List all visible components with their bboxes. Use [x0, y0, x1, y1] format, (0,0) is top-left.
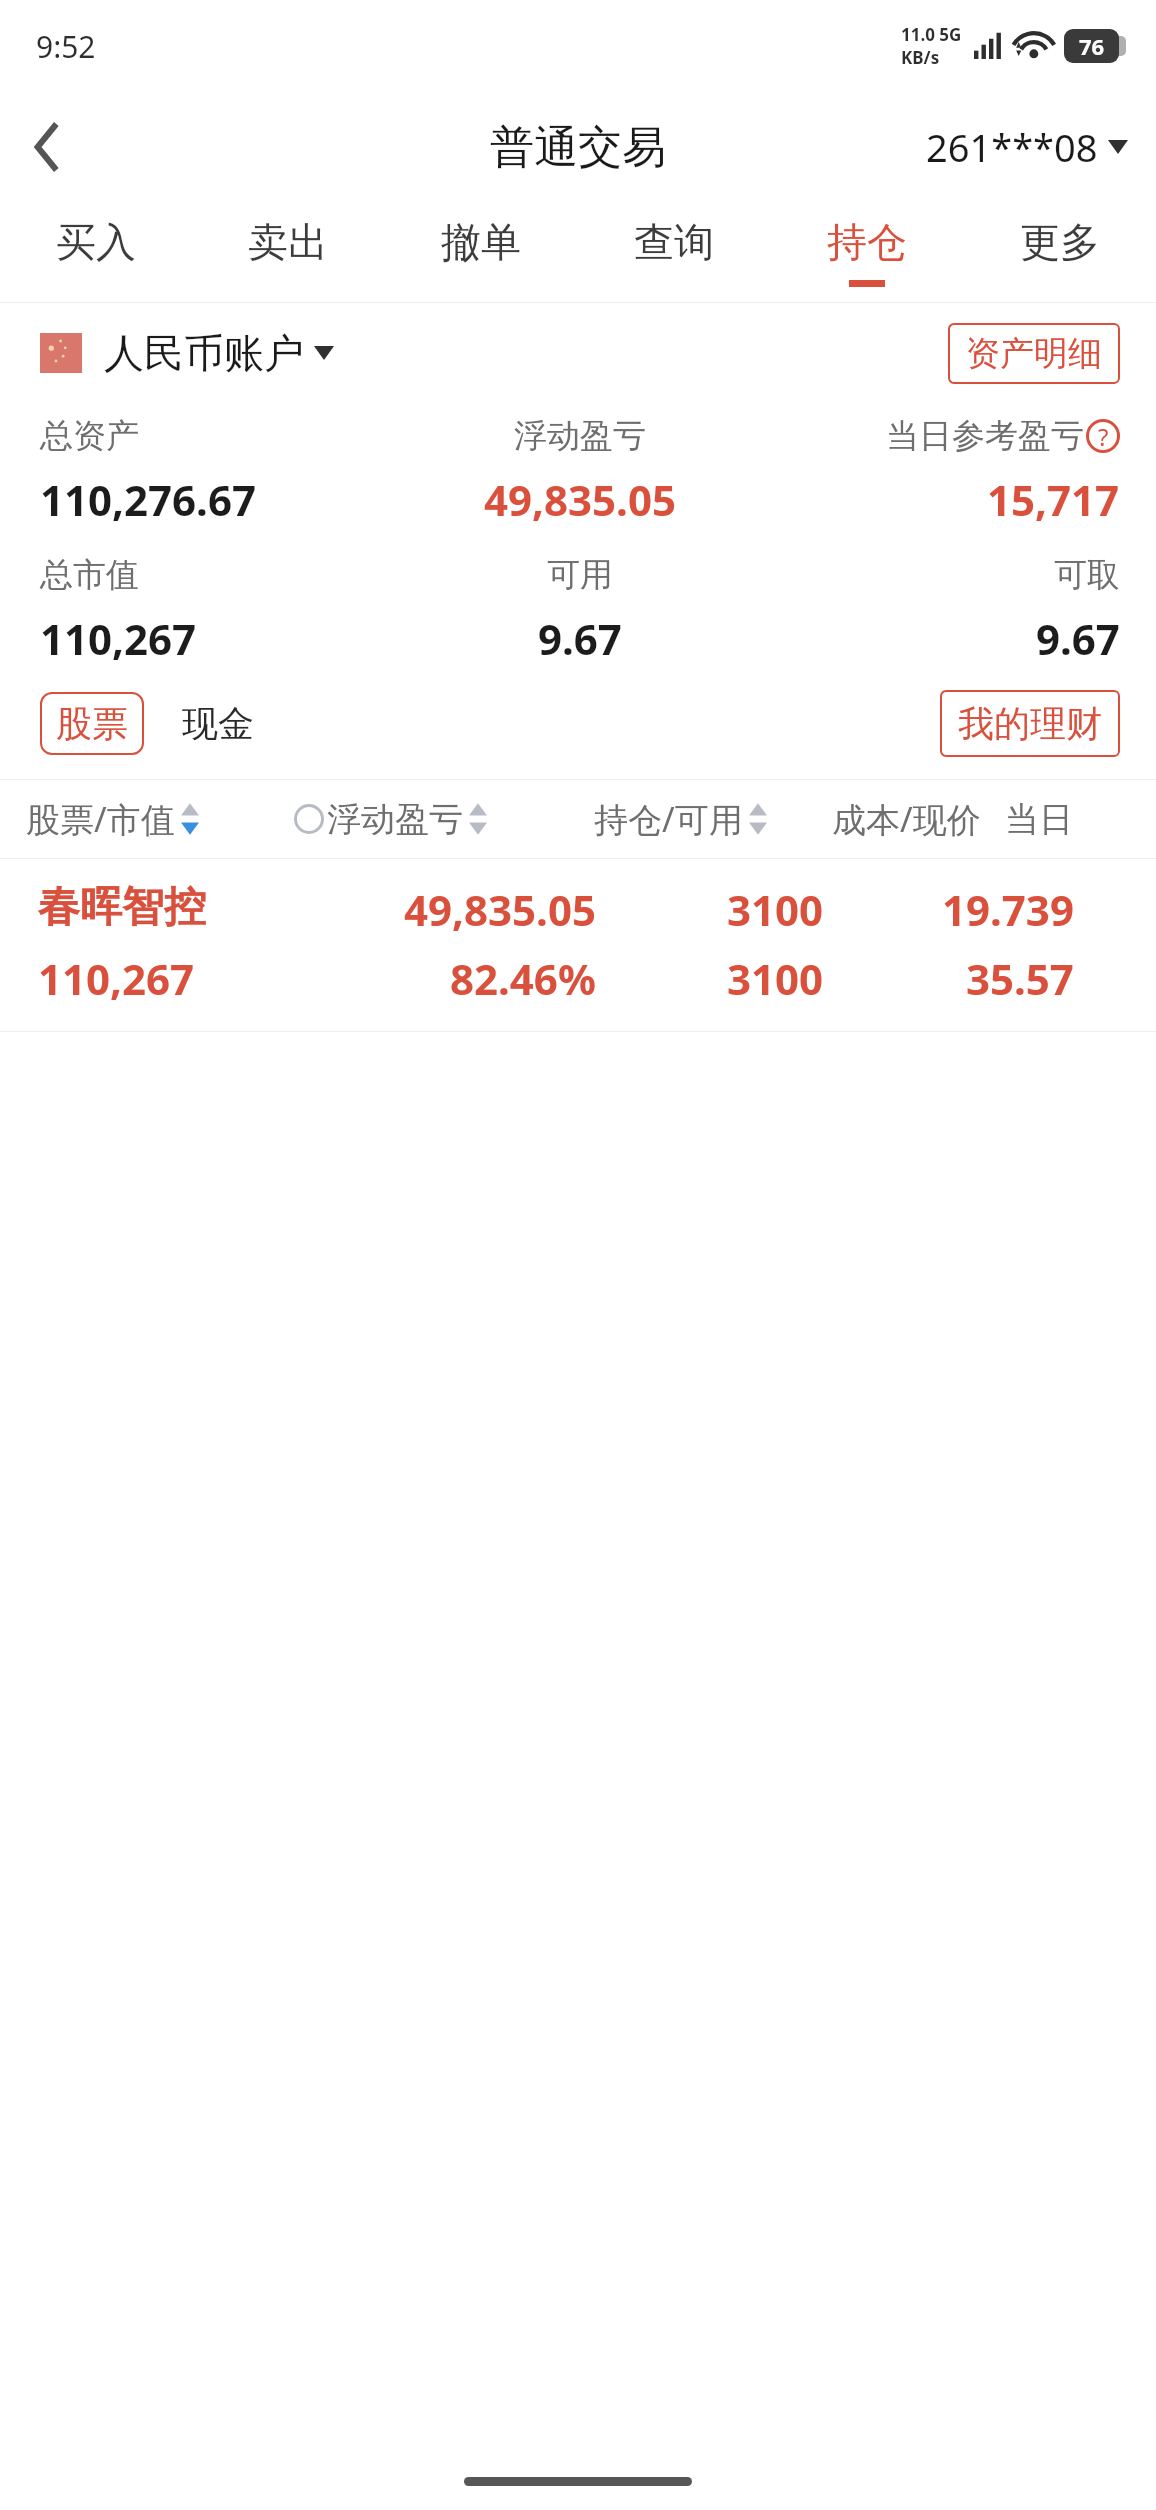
button[interactable]: 查询 — [577, 202, 770, 302]
staticText: 261***08 — [926, 121, 1098, 173]
staticText: 总资产 — [40, 415, 139, 457]
button[interactable]: 撤单 — [384, 202, 577, 302]
button[interactable]: Back — [0, 99, 96, 195]
button[interactable]: 买入 — [0, 202, 192, 302]
button[interactable]: 我的理财 — [940, 690, 1120, 757]
staticText: 更多 — [1020, 217, 1100, 267]
button[interactable]: 春晖智控 — [0, 859, 1156, 1031]
button[interactable]: 人民币账户 — [40, 328, 334, 378]
staticText: 19.739 — [942, 881, 1074, 938]
staticText: 可用 — [547, 554, 613, 596]
button[interactable]: 卖出 — [192, 202, 384, 302]
staticText: 卖出 — [248, 217, 328, 267]
staticText: 110,267 — [38, 950, 195, 1007]
staticText: 82.46% — [450, 950, 596, 1007]
button[interactable]: 持仓 — [770, 202, 963, 302]
button[interactable]: 持仓/可用 — [594, 780, 832, 858]
staticText: 9.67 — [538, 610, 622, 667]
staticText: 普通交易 — [490, 120, 666, 175]
button[interactable]: 股票/市值 — [26, 780, 294, 858]
staticText: 持仓 — [827, 217, 907, 267]
staticText: 11.0 5G — [901, 23, 962, 46]
staticText: 9.67 — [1036, 610, 1120, 667]
staticText: 当日 — [1005, 798, 1073, 841]
button[interactable]: 帮助 — [1086, 419, 1120, 453]
staticText: KB/s — [901, 46, 940, 69]
staticText: 15,717 — [987, 471, 1120, 528]
staticText: 我的理财 — [958, 701, 1102, 746]
button[interactable]: 261***08 — [922, 113, 1132, 181]
staticText: 35.57 — [966, 950, 1074, 1007]
staticText: 9:52 — [36, 26, 96, 67]
staticText: 110,267 — [40, 610, 197, 667]
staticText: 股票/市值 — [26, 796, 175, 842]
staticText: 股票 — [56, 701, 128, 746]
button[interactable]: 资产明细 — [948, 323, 1120, 384]
button[interactable]: 更多 — [963, 202, 1156, 302]
staticText: 总市值 — [40, 554, 139, 596]
staticText: 49,835.05 — [484, 471, 676, 528]
staticText: 3100 — [727, 881, 824, 938]
button[interactable]: 浮动盈亏 — [294, 780, 594, 858]
staticText: 3100 — [727, 950, 824, 1007]
staticText: 查询 — [634, 217, 714, 267]
staticText: 当日参考盈亏 — [886, 415, 1084, 457]
staticText: 49,835.05 — [404, 881, 596, 938]
button[interactable]: 股票 — [40, 692, 144, 755]
staticText: 人民币账户 — [104, 328, 304, 378]
button[interactable]: 现金 — [178, 692, 258, 755]
staticText: 撤单 — [441, 217, 521, 267]
staticText: 买入 — [56, 217, 136, 267]
button[interactable]: 成本/现价 — [832, 780, 1073, 858]
staticText: 春晖智控 — [38, 881, 206, 934]
staticText: 资产明细 — [966, 332, 1102, 375]
staticText: 成本/现价 — [832, 796, 981, 842]
staticText: 浮动盈亏 — [514, 415, 646, 457]
staticText: 浮动盈亏 — [327, 798, 463, 841]
staticText: ? — [1098, 420, 1109, 453]
staticText: 持仓/可用 — [594, 796, 743, 842]
staticText: 76 — [1079, 31, 1105, 61]
staticText: 现金 — [182, 701, 254, 746]
staticText: 可取 — [1054, 554, 1120, 596]
staticText: 110,276.67 — [40, 471, 256, 528]
